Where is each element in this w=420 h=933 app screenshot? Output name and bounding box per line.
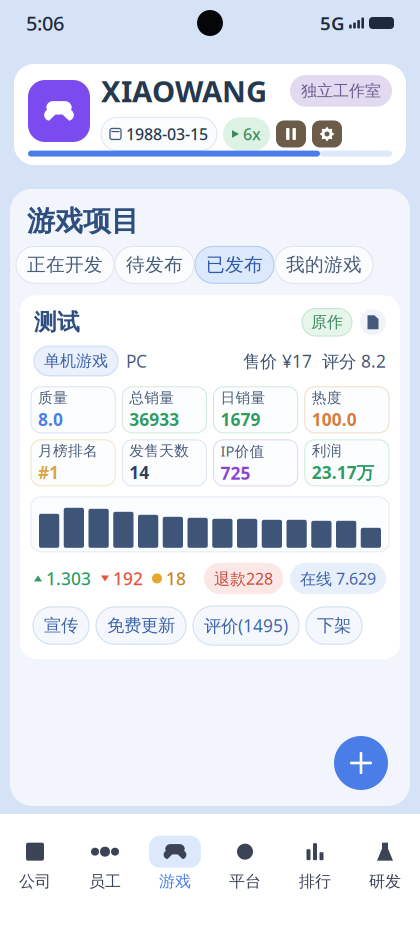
staticText: 测试 (34, 308, 80, 336)
staticText: 退款228 (214, 568, 273, 589)
button[interactable]: 宣传 (33, 607, 89, 644)
staticText: 725 (220, 462, 250, 485)
staticText: 18 (166, 567, 186, 590)
button[interactable]: Details (360, 309, 386, 335)
staticText: 原作 (311, 312, 343, 332)
button[interactable]: 公司 (0, 836, 70, 911)
staticText: 5:06 (26, 10, 64, 36)
button[interactable]: 游戏 (140, 836, 210, 911)
staticText: 192 (113, 567, 143, 590)
button[interactable]: Add game (334, 736, 388, 790)
button[interactable]: 员工 (70, 836, 140, 911)
staticText: 宣传 (44, 615, 78, 636)
button[interactable]: 独立工作室 (290, 75, 392, 107)
staticText: 1679 (220, 408, 260, 431)
staticText: 1988-03-15 (126, 123, 208, 145)
staticText: 我的游戏 (286, 253, 362, 276)
staticText: 游戏 (159, 872, 191, 891)
staticText: 游戏项目 (27, 204, 139, 238)
staticText: 平台 (229, 872, 261, 891)
staticText: IP价值 (220, 441, 264, 461)
staticText: 5G (320, 11, 345, 35)
button[interactable]: 评价(1495) (193, 606, 299, 645)
staticText: PC (126, 349, 147, 372)
button[interactable]: 研发 (350, 836, 420, 911)
button[interactable]: 已发布 (195, 246, 274, 283)
staticText: 售价 ¥17 评分 8.2 (243, 349, 386, 372)
staticText: 待发布 (126, 253, 183, 276)
staticText: 公司 (19, 872, 51, 891)
staticText: 14 (129, 461, 149, 484)
staticText: 1.303 (46, 567, 91, 590)
staticText: 免费更新 (107, 615, 175, 636)
staticText: 研发 (369, 872, 401, 891)
button[interactable]: Settings (312, 120, 342, 147)
button[interactable]: 我的游戏 (275, 246, 373, 283)
staticText: 在线 7.629 (300, 568, 376, 589)
staticText: XIAOWANG (101, 71, 267, 110)
button[interactable]: 平台 (210, 836, 280, 911)
staticText: 员工 (89, 872, 121, 891)
staticText: 发售天数 (129, 442, 189, 460)
button[interactable]: 免费更新 (96, 607, 186, 644)
button[interactable]: 正在开发 (16, 246, 114, 283)
staticText: 排行 (299, 872, 331, 891)
staticText: 100.0 (312, 408, 357, 431)
staticText: 利润 (312, 442, 342, 460)
staticText: 36933 (129, 408, 179, 431)
staticText: 总销量 (129, 389, 174, 407)
staticText: #1 (38, 461, 59, 484)
button[interactable]: Pause (276, 120, 306, 147)
staticText: 月榜排名 (38, 442, 98, 460)
staticText: 质量 (38, 389, 68, 407)
button[interactable]: 下架 (306, 607, 362, 644)
staticText: 正在开发 (27, 253, 103, 276)
staticText: 8.0 (38, 408, 63, 431)
staticText: 23.17万 (312, 461, 374, 484)
staticText: 评价(1495) (204, 614, 288, 637)
staticText: 单机游戏 (44, 351, 108, 371)
staticText: 下架 (317, 615, 351, 636)
staticText: 6x (243, 123, 261, 145)
button[interactable]: 待发布 (115, 246, 194, 283)
button[interactable]: 排行 (280, 836, 350, 911)
staticText: 已发布 (206, 253, 263, 276)
staticText: 独立工作室 (301, 81, 381, 101)
staticText: 热度 (312, 389, 342, 407)
staticText: 日销量 (220, 389, 265, 407)
